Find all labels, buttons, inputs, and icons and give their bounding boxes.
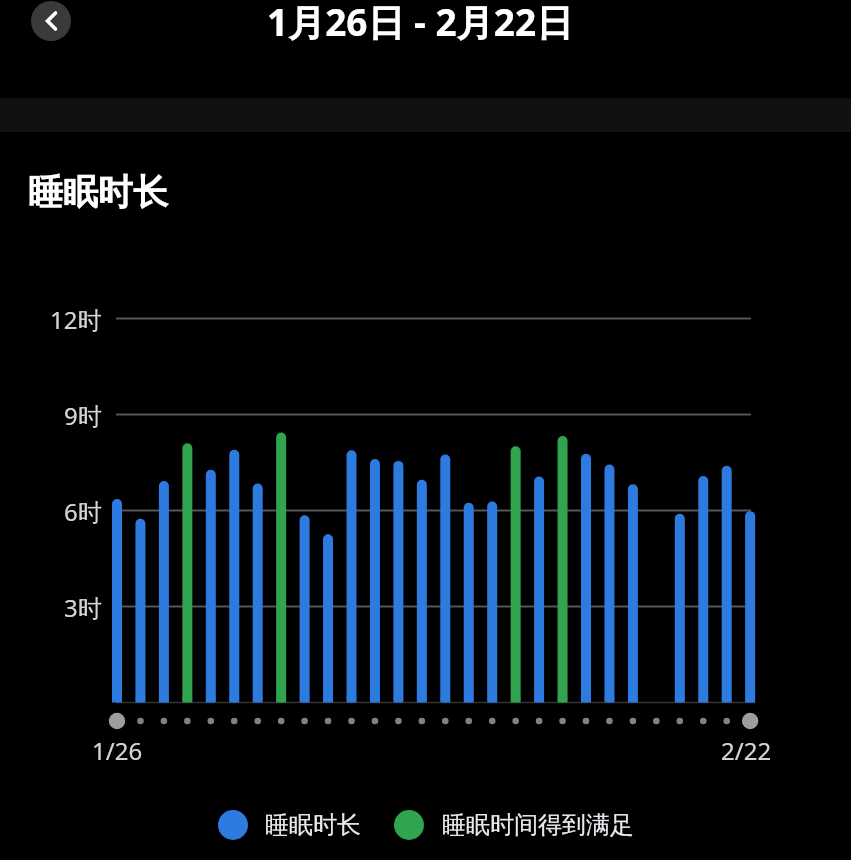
staticText: 1/26	[92, 734, 143, 766]
staticText: 3时	[64, 591, 102, 624]
staticText: 2/22	[721, 734, 772, 766]
button[interactable]	[31, 1, 71, 41]
staticText: 睡眠时长	[28, 170, 168, 214]
staticText: 睡眠时间得到满足	[442, 810, 634, 840]
staticText: 12时	[50, 303, 102, 336]
staticText: 6时	[64, 495, 102, 528]
staticText: 1月26日 - 2月22日	[267, 0, 574, 44]
staticText: 9时	[64, 399, 102, 432]
staticText: 睡眠时长	[265, 810, 361, 840]
